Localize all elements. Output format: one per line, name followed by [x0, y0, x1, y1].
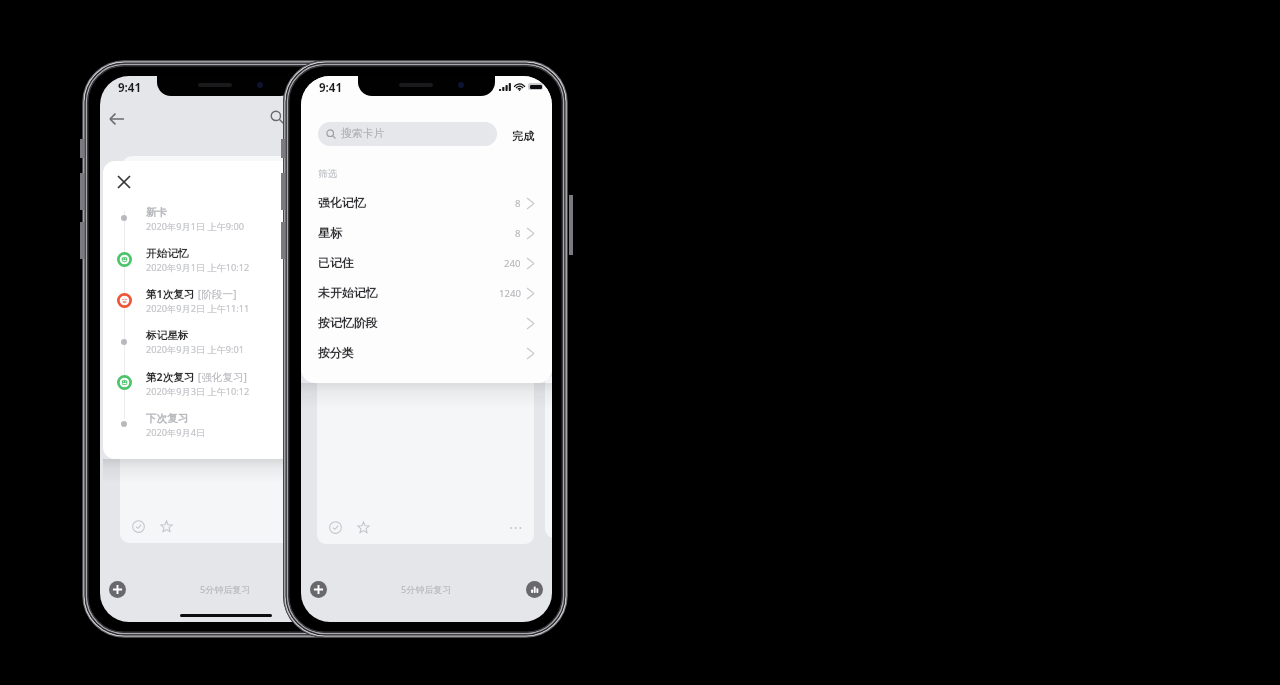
staticText: 2020年9月1日 上午10:12 — [146, 261, 250, 274]
button[interactable]: Close — [118, 176, 130, 188]
staticText: 下次复习 — [146, 412, 189, 425]
staticText: 第2次复习 — [146, 370, 195, 384]
button[interactable]: 星标 — [301, 218, 552, 248]
staticText: 搜索卡片 — [341, 127, 385, 141]
staticText: 已记住 — [318, 256, 354, 271]
staticText: 未开始记忆 — [318, 286, 378, 301]
staticText: 5分钟后复习 — [401, 583, 452, 595]
staticText: [阶段一] — [195, 287, 237, 301]
staticText: 开始记忆 — [146, 247, 189, 260]
button[interactable]: 标记星标 — [146, 325, 306, 355]
button[interactable]: Star — [160, 520, 173, 533]
button[interactable]: 新卡 — [146, 202, 306, 232]
staticText: 第1次复习 — [146, 287, 195, 301]
button[interactable]: 第2次复习 — [146, 367, 306, 397]
staticText: 1240 — [499, 287, 521, 300]
staticText: 完成 — [512, 129, 534, 143]
button[interactable]: Statistics — [526, 581, 543, 598]
staticText: 5分钟后复习 — [200, 583, 251, 595]
button[interactable]: More — [510, 527, 523, 529]
staticText: 8 — [515, 197, 521, 210]
button[interactable]: Back — [110, 108, 124, 130]
button[interactable]: 按分类 — [301, 338, 552, 368]
button[interactable]: 第1次复习 — [146, 284, 306, 314]
staticText: 2020年9月4日 — [146, 426, 206, 439]
staticText: 240 — [504, 257, 521, 270]
button[interactable]: 搜索卡片 — [318, 122, 497, 146]
staticText: 强化记忆 — [318, 196, 366, 211]
button[interactable]: 按记忆阶段 — [301, 308, 552, 338]
button[interactable]: Add card — [310, 581, 327, 598]
staticText: [强化复习] — [195, 370, 248, 384]
button[interactable]: 开始记忆 — [146, 243, 306, 273]
button[interactable]: 强化记忆 — [301, 188, 552, 218]
staticText: 2020年9月3日 上午9:01 — [146, 343, 245, 356]
button[interactable]: 下次复习 — [146, 408, 306, 438]
staticText: 按记忆阶段 — [318, 316, 378, 331]
button[interactable]: 未开始记忆 — [301, 278, 552, 308]
staticText: 按分类 — [318, 346, 354, 361]
button[interactable]: Search — [270, 110, 284, 124]
staticText: 筛选 — [318, 168, 337, 180]
staticText: 2020年9月1日 上午9:00 — [146, 220, 245, 233]
staticText: 2020年9月2日 上午11:11 — [146, 302, 250, 315]
button[interactable]: 已记住 — [301, 248, 552, 278]
staticText: 9:41 — [118, 80, 141, 96]
staticText: 星标 — [318, 226, 342, 241]
staticText: 9:41 — [319, 80, 342, 96]
staticText: 标记星标 — [146, 329, 189, 342]
staticText: 新卡 — [146, 206, 168, 219]
button[interactable]: Mark learned — [329, 521, 342, 534]
staticText: 2020年9月3日 上午10:12 — [146, 385, 250, 398]
staticText: 8 — [515, 227, 521, 240]
button[interactable]: Add card — [109, 581, 126, 598]
button[interactable]: 完成 — [507, 125, 539, 147]
button[interactable]: Mark learned — [132, 520, 145, 533]
button[interactable]: Star — [357, 521, 370, 534]
